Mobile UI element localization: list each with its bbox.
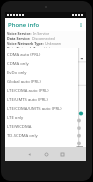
button[interactable]: Home bbox=[41, 149, 51, 159]
staticText: Voice Service: bbox=[7, 31, 32, 36]
staticText: Unknown bbox=[44, 41, 62, 46]
staticText: In Service bbox=[32, 31, 50, 36]
staticText: LTE/CDMA/UMTS auto (PRL) bbox=[7, 106, 62, 112]
staticText: LTE/WCDMA bbox=[7, 124, 32, 130]
staticText: CDMA auto (PRL) bbox=[7, 52, 41, 58]
button[interactable]: LTE only bbox=[5, 113, 78, 122]
staticText: Voice Network Type: bbox=[7, 41, 44, 46]
button[interactable]: LTE/CDMA auto (PRL) bbox=[5, 86, 78, 95]
button[interactable]: Back bbox=[24, 149, 34, 159]
staticText: LTE only bbox=[7, 115, 24, 121]
button[interactable]: Recent apps bbox=[57, 149, 67, 159]
staticText: Data Network Type: bbox=[7, 46, 43, 51]
staticText: Unknown bbox=[43, 46, 61, 51]
button[interactable]: LTE/WCDMA bbox=[5, 122, 78, 131]
button[interactable]: More options bbox=[77, 21, 85, 29]
staticText: LTE/UMTS auto (PRL) bbox=[7, 97, 48, 103]
button[interactable]: CDMA only bbox=[5, 59, 78, 68]
staticText: CDMA only bbox=[7, 61, 29, 67]
button[interactable]: LTE/CDMA/UMTS auto (PRL) bbox=[5, 104, 78, 113]
staticText: Disconnected bbox=[31, 36, 55, 41]
staticText: LTE/CDMA auto (PRL) bbox=[7, 88, 49, 94]
staticText: Global auto (PRL) bbox=[7, 79, 41, 85]
staticText: Phone info bbox=[8, 21, 40, 29]
button[interactable]: EvDo only bbox=[5, 68, 78, 77]
button[interactable]: LTE/UMTS auto (PRL) bbox=[5, 95, 78, 104]
button[interactable]: Global auto (PRL) bbox=[5, 77, 78, 86]
button[interactable]: CDMA auto (PRL) bbox=[5, 50, 78, 59]
button[interactable]: TD-SCDMA only bbox=[5, 131, 78, 140]
staticText: TD-SCDMA only bbox=[7, 133, 38, 139]
staticText: EvDo only bbox=[7, 70, 27, 76]
staticText: Data Service: bbox=[7, 36, 31, 41]
